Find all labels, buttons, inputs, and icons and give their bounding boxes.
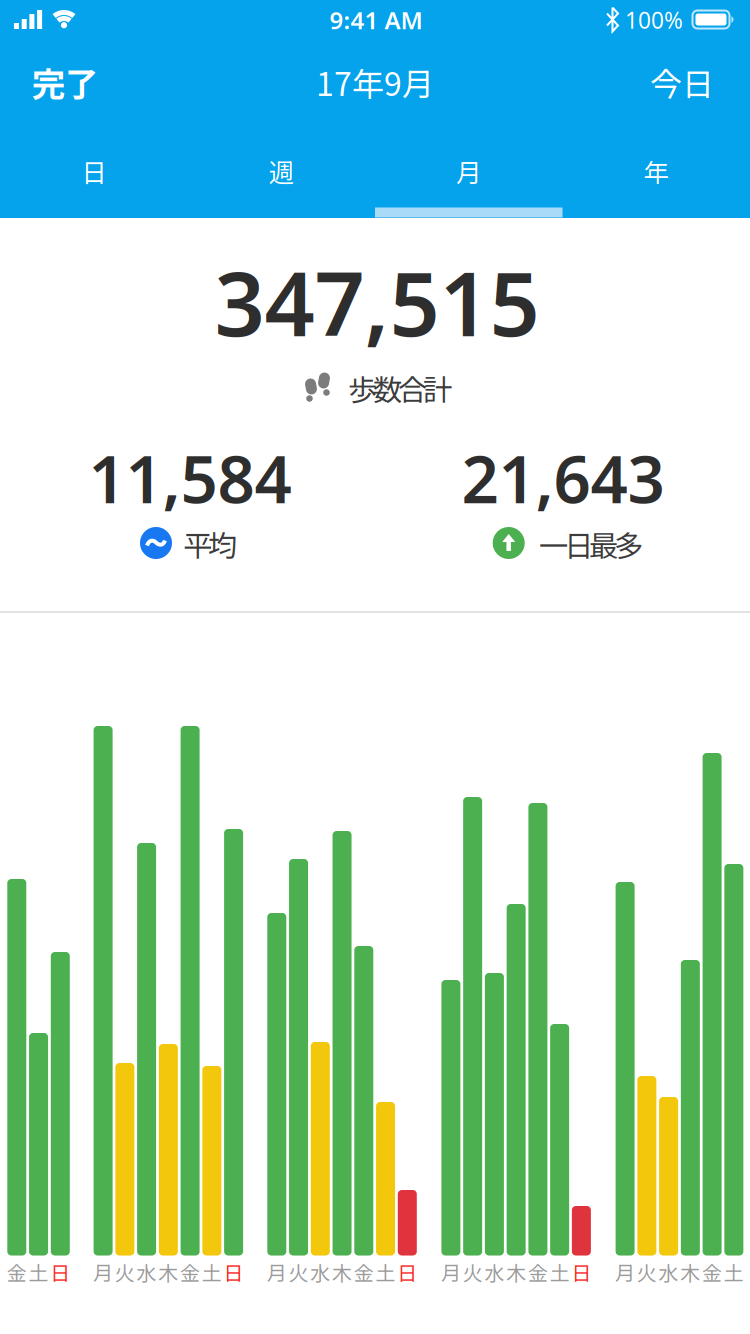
staticText: 水 xyxy=(137,1257,157,1286)
staticText: 347,515 xyxy=(214,244,539,360)
staticText: 水 xyxy=(310,1257,330,1286)
staticText: 金 xyxy=(7,1257,27,1286)
staticText: 日 xyxy=(224,1257,244,1286)
staticText: 今日 xyxy=(650,59,714,105)
staticText: 木 xyxy=(680,1257,700,1286)
staticText: 金 xyxy=(180,1257,200,1286)
button[interactable]: 年 xyxy=(562,127,750,215)
staticText: 21,643 xyxy=(461,435,664,521)
staticText: 木 xyxy=(506,1257,526,1286)
staticText: 週 xyxy=(269,153,294,189)
staticText: 金 xyxy=(702,1257,722,1286)
staticText: 月 xyxy=(615,1257,635,1286)
staticText: 日 xyxy=(50,1257,70,1286)
staticText: 水 xyxy=(484,1257,504,1286)
staticText: 歩数合計 xyxy=(348,367,452,409)
staticText: 日 xyxy=(571,1257,591,1286)
staticText: 17年9月 xyxy=(316,59,434,105)
staticText: 木 xyxy=(158,1257,178,1286)
staticText: 日 xyxy=(397,1257,417,1286)
staticText: 土 xyxy=(202,1257,222,1286)
staticText: 火 xyxy=(115,1257,135,1286)
button[interactable]: 完了 xyxy=(10,52,120,112)
staticText: 日 xyxy=(81,153,106,189)
staticText: 100% xyxy=(625,5,683,35)
staticText: 月 xyxy=(267,1257,287,1286)
staticText: 月 xyxy=(93,1257,113,1286)
staticText: 11,584 xyxy=(88,435,291,521)
button[interactable]: 今日 xyxy=(627,52,737,112)
staticText: 水 xyxy=(659,1257,679,1286)
button[interactable]: 日 xyxy=(0,127,187,215)
staticText: 一日最多 xyxy=(539,523,643,565)
staticText: 月 xyxy=(456,153,481,189)
button[interactable]: 月 xyxy=(375,127,562,215)
staticText: 平均 xyxy=(183,523,237,565)
staticText: 土 xyxy=(550,1257,570,1286)
staticText: 木 xyxy=(332,1257,352,1286)
staticText: 金 xyxy=(354,1257,374,1286)
staticText: 火 xyxy=(463,1257,483,1286)
staticText: 火 xyxy=(637,1257,657,1286)
staticText: 完了 xyxy=(32,58,98,106)
staticText: 土 xyxy=(28,1257,48,1286)
staticText: 火 xyxy=(289,1257,309,1286)
staticText: 9:41 AM xyxy=(329,4,422,36)
staticText: 年 xyxy=(644,153,669,189)
staticText: 土 xyxy=(724,1257,744,1286)
staticText: 金 xyxy=(528,1257,548,1286)
staticText: 土 xyxy=(376,1257,396,1286)
button[interactable]: 週 xyxy=(187,127,375,215)
staticText: 月 xyxy=(441,1257,461,1286)
